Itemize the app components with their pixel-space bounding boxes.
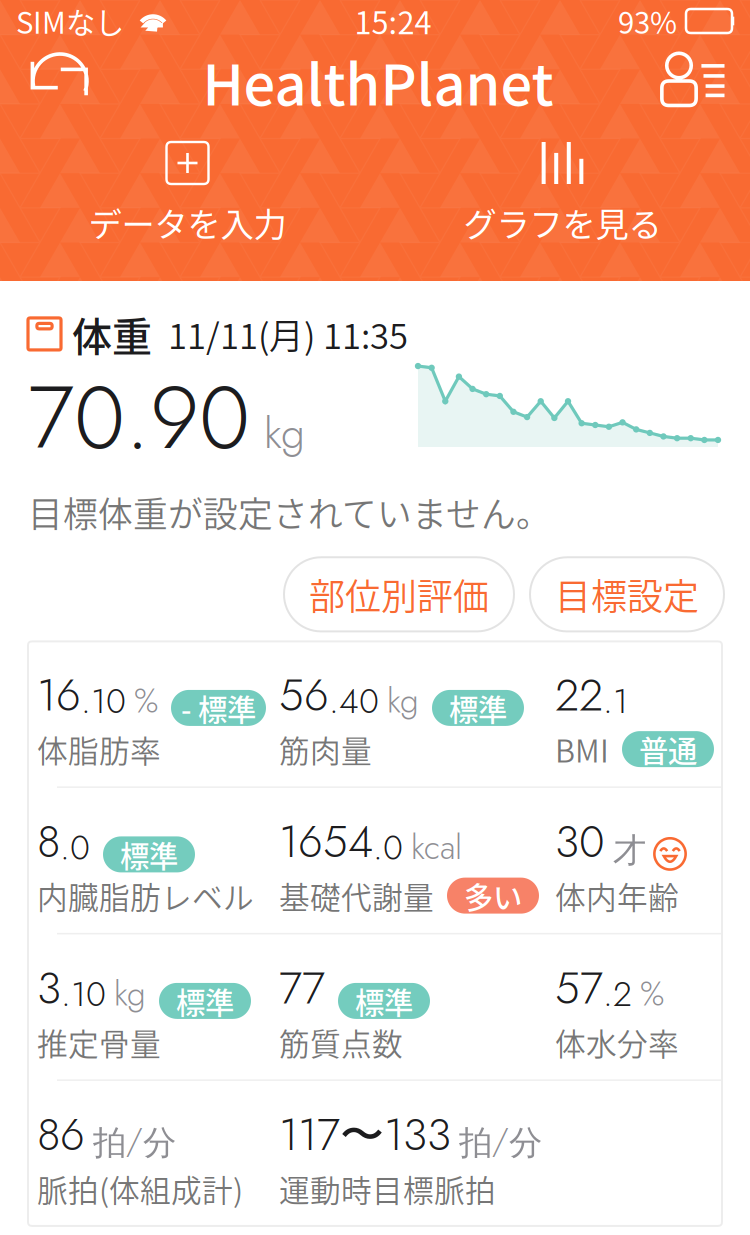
staticText: 目標設定	[555, 568, 699, 620]
staticText: .0	[373, 823, 403, 872]
button[interactable]: グラフを見る	[375, 142, 750, 246]
staticText: kg	[264, 402, 305, 464]
staticText: HealthPlanet	[202, 40, 553, 122]
staticText: 22	[555, 663, 603, 727]
staticText: 体重	[72, 305, 152, 363]
staticText: 標準	[449, 687, 507, 729]
staticText: 推定骨量	[37, 1020, 161, 1064]
staticText: 86	[37, 1103, 85, 1166]
staticText: データを入力	[88, 198, 286, 246]
staticText: 117〜133	[279, 1103, 451, 1166]
staticText: kcal	[411, 823, 462, 871]
staticText: 筋肉量	[279, 727, 372, 771]
staticText: - 標準	[181, 687, 256, 729]
staticText: .10	[81, 676, 126, 726]
staticText: 標準	[355, 980, 413, 1022]
staticText: 3	[37, 956, 61, 1020]
staticText: 拍/分	[93, 1116, 176, 1164]
staticText: 57	[555, 956, 603, 1020]
staticText: 筋質点数	[279, 1020, 403, 1064]
staticText: 脈拍(体組成計)	[37, 1166, 243, 1211]
button[interactable]: 部位別評価	[284, 557, 514, 631]
staticText: 11/11(月) 11:35	[168, 309, 408, 359]
staticText: 運動時目標脈拍	[279, 1166, 496, 1211]
button[interactable]: 目標設定	[530, 557, 724, 631]
staticText: 部位別評価	[309, 568, 489, 620]
staticText: 1654	[279, 810, 373, 873]
staticText: 体内年齢	[555, 873, 679, 918]
staticText: %	[640, 970, 664, 1018]
button[interactable]: Account	[658, 45, 728, 117]
staticText: 才	[613, 829, 646, 871]
staticText: BMI	[555, 727, 609, 771]
staticText: 標準	[120, 833, 178, 876]
staticText: 基礎代謝量	[279, 873, 434, 918]
staticText: %	[134, 677, 158, 725]
staticText: 8	[37, 810, 60, 873]
staticText: 体水分率	[555, 1020, 679, 1064]
staticText: .10	[61, 969, 106, 1019]
staticText: 56	[279, 663, 329, 727]
button[interactable]: Sync	[22, 43, 98, 119]
staticText: 目標体重が設定されていません。	[28, 487, 551, 537]
button[interactable]: データを入力	[0, 142, 375, 246]
staticText: 体脂肪率	[37, 727, 161, 771]
staticText: グラフを見る	[463, 198, 661, 246]
staticText: 30	[555, 810, 605, 873]
staticText: 77	[279, 956, 325, 1020]
staticText: .2	[603, 969, 632, 1019]
staticText: kg	[114, 970, 146, 1018]
staticText: .1	[603, 676, 628, 726]
staticText: 16	[37, 663, 81, 727]
staticText: 93%	[618, 0, 677, 42]
staticText: 普通	[639, 728, 697, 770]
staticText: SIMなし	[16, 0, 124, 42]
staticText: 多い	[464, 874, 522, 917]
staticText: 拍/分	[459, 1116, 542, 1164]
staticText: .0	[60, 823, 90, 872]
staticText: 標準	[176, 980, 234, 1022]
staticText: 15:24	[354, 0, 431, 43]
staticText: .40	[329, 676, 379, 726]
staticText: kg	[387, 677, 419, 725]
staticText: 70.90	[28, 354, 250, 481]
staticText: 内臓脂肪レベル	[37, 873, 254, 918]
